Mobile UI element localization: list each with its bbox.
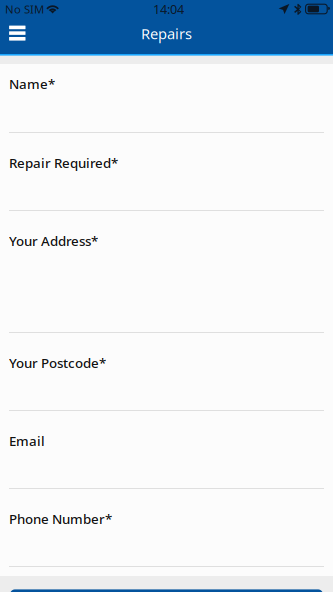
- button[interactable]: Email: [0, 411, 333, 489]
- button[interactable]: Your Postcode*: [0, 333, 333, 411]
- button[interactable]: Submit: [10, 589, 323, 592]
- button[interactable]: Menu: [1, 18, 33, 48]
- staticText: 14:04: [153, 1, 184, 18]
- staticText: Your Postcode*: [9, 354, 106, 372]
- staticText: Repair Required*: [9, 154, 118, 172]
- staticText: Your Address*: [9, 232, 98, 250]
- staticText: Phone Number*: [9, 510, 112, 528]
- staticText: Repairs: [141, 24, 192, 43]
- button[interactable]: Repair Required*: [0, 133, 333, 211]
- staticText: No SIM: [5, 1, 44, 16]
- button[interactable]: Your Address*: [0, 211, 333, 333]
- staticText: Email: [9, 432, 45, 450]
- staticText: Name*: [9, 75, 55, 93]
- button[interactable]: Phone Number*: [0, 489, 333, 567]
- button[interactable]: Name*: [0, 64, 333, 133]
